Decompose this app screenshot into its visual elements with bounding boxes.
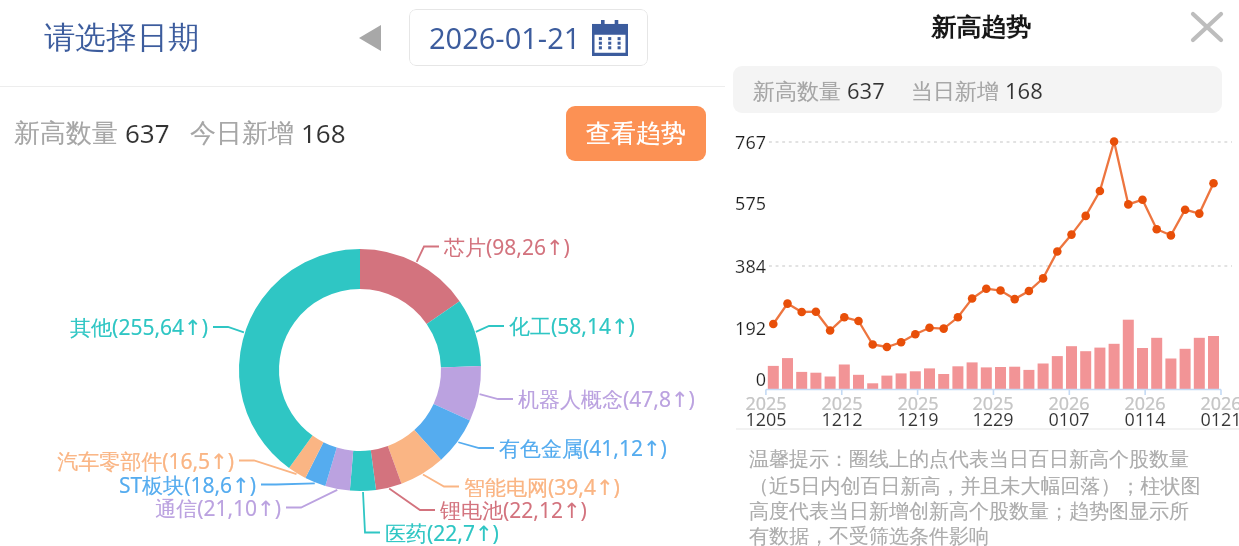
staticText: 通信(21,10↑) <box>0 494 281 523</box>
button[interactable]: 请选择日期 <box>44 18 199 57</box>
staticText: 请选择日期 <box>44 18 199 57</box>
staticText: 1229 <box>953 407 1033 432</box>
staticText: 168 <box>301 115 346 150</box>
staticText: 汽车零部件(16,5↑) <box>0 447 234 476</box>
staticText: 新高趋势 <box>931 12 1031 43</box>
button[interactable]: 查看趋势 <box>566 106 706 161</box>
staticText: 智能电网(39,4↑) <box>464 473 620 502</box>
staticText: 2025 <box>802 391 882 416</box>
staticText: 1212 <box>802 407 882 432</box>
staticText: 机器人概念(47,8↑) <box>518 385 695 414</box>
staticText: 2025 <box>878 391 958 416</box>
staticText: 168 <box>1005 75 1043 105</box>
staticText: 2025 <box>726 391 806 416</box>
staticText: 2026 <box>1181 391 1239 416</box>
staticText: 2026 <box>1029 391 1109 416</box>
staticText: 医药(22,7↑) <box>385 519 499 546</box>
staticText: 温馨提示：圈线上的点代表当日百日新高个股数量（近5日内创百日新高，并且未大幅回落… <box>749 447 1205 546</box>
staticText: 0107 <box>1029 407 1109 432</box>
staticText: 芯片(98,26↑) <box>444 233 570 262</box>
staticText: 0 <box>0 367 766 392</box>
staticText: 1219 <box>878 407 958 432</box>
staticText: 锂电池(22,12↑) <box>440 496 587 525</box>
button[interactable]: 2026-01-21 <box>409 9 648 66</box>
staticText: 767 <box>0 130 766 155</box>
staticText: 192 <box>0 316 766 341</box>
staticText: 有色金属(41,12↑) <box>499 434 667 463</box>
staticText: 384 <box>0 254 766 279</box>
staticText: 637 <box>847 75 885 105</box>
staticText: 今日新增 <box>190 114 301 150</box>
staticText: 化工(58,14↑) <box>509 312 635 341</box>
staticText: 当日新增 <box>911 75 1005 105</box>
staticText: 0114 <box>1105 407 1185 432</box>
staticText: 575 <box>0 191 766 216</box>
staticText: 2026-01-21 <box>429 18 581 57</box>
staticText: 2026 <box>1105 391 1185 416</box>
button[interactable]: Close <box>1186 6 1228 48</box>
staticText: 1205 <box>726 407 806 432</box>
staticText: 新高数量 <box>14 114 125 150</box>
staticText: 637 <box>125 115 170 150</box>
staticText: 查看趋势 <box>586 118 686 149</box>
staticText: 其他(255,64↑) <box>0 313 208 342</box>
staticText: 新高数量 <box>753 75 847 105</box>
staticText: ST板块(18,6↑) <box>0 471 256 500</box>
button[interactable]: Previous day <box>348 19 392 57</box>
staticText: 0121 <box>1181 407 1239 432</box>
staticText: 2025 <box>953 391 1033 416</box>
